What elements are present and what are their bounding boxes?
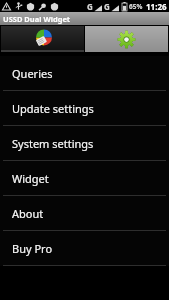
button[interactable]: Settings tab bbox=[85, 26, 168, 52]
staticText: 11:26 bbox=[146, 1, 167, 12]
staticText: G bbox=[104, 1, 110, 12]
staticText: Widget bbox=[12, 171, 49, 186]
button[interactable]: Queries tab bbox=[1, 26, 84, 52]
staticText: Buy Pro bbox=[12, 241, 53, 256]
staticText: Update settings bbox=[12, 101, 94, 116]
staticText: System settings bbox=[12, 136, 94, 151]
button[interactable]: Queries bbox=[0, 56, 169, 90]
button[interactable]: Update settings bbox=[0, 91, 169, 125]
button[interactable]: About bbox=[0, 196, 169, 230]
staticText: USSD Dual Widget bbox=[3, 14, 71, 24]
staticText: G bbox=[87, 1, 93, 12]
staticText: Queries bbox=[12, 66, 53, 81]
staticText: About bbox=[12, 206, 44, 221]
staticText: 65% bbox=[129, 2, 143, 11]
button[interactable]: Widget bbox=[0, 161, 169, 195]
button[interactable]: System settings bbox=[0, 126, 169, 160]
button[interactable]: Buy Pro bbox=[0, 231, 169, 265]
